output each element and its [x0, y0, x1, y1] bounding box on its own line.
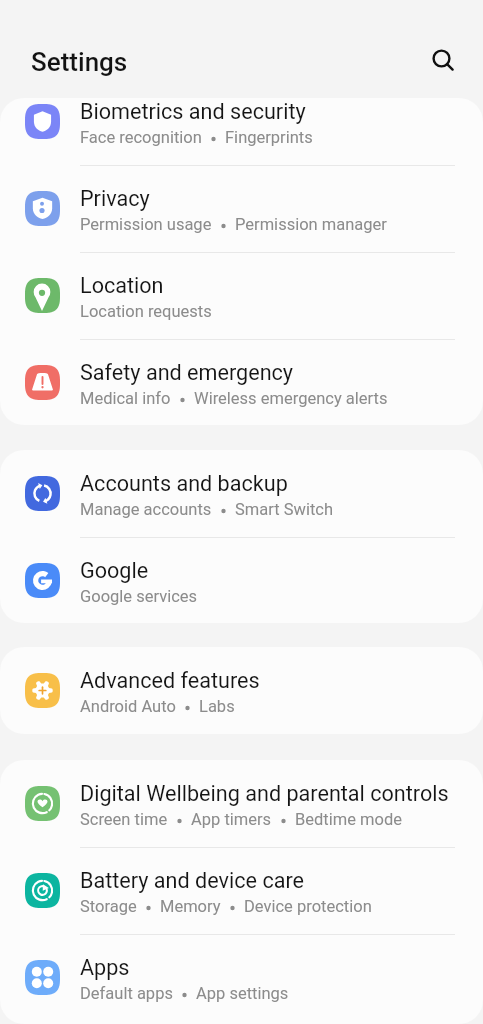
- staticText: Default apps: [80, 984, 173, 1003]
- staticText: Permission manager: [235, 215, 387, 234]
- staticText: Location requests: [80, 302, 212, 321]
- button[interactable]: Advanced features: [0, 647, 483, 734]
- staticText: Biometrics and security: [80, 99, 306, 124]
- staticText: Fingerprints: [225, 128, 313, 147]
- staticText: Digital Wellbeing and parental controls: [80, 781, 449, 806]
- button[interactable]: Digital Wellbeing and parental controls: [0, 760, 483, 847]
- staticText: Android Auto: [80, 697, 176, 716]
- staticText: Labs: [199, 697, 235, 716]
- staticText: App timers: [191, 810, 272, 829]
- staticText: App settings: [196, 984, 289, 1003]
- button[interactable]: Search: [417, 35, 465, 83]
- button[interactable]: Accounts and backup: [0, 450, 483, 537]
- staticText: Permission usage: [80, 215, 212, 234]
- staticText: Battery and device care: [80, 868, 304, 893]
- staticText: Device protection: [244, 897, 372, 916]
- staticText: Accounts and backup: [80, 471, 288, 496]
- staticText: Storage: [80, 897, 137, 916]
- button[interactable]: Battery and device care: [0, 847, 483, 934]
- button[interactable]: Biometrics and security: [0, 98, 483, 165]
- button[interactable]: Apps: [0, 934, 483, 1021]
- staticText: Bedtime mode: [295, 810, 402, 829]
- button[interactable]: Google: [0, 537, 483, 623]
- staticText: Safety and emergency: [80, 360, 294, 385]
- staticText: Advanced features: [80, 668, 260, 693]
- staticText: Face recognition: [80, 128, 202, 147]
- button[interactable]: Location: [0, 252, 483, 339]
- staticText: Wireless emergency alerts: [194, 389, 388, 408]
- staticText: Manage accounts: [80, 500, 212, 519]
- staticText: Location: [80, 273, 164, 298]
- staticText: Apps: [80, 955, 130, 980]
- staticText: Smart Switch: [235, 500, 334, 519]
- staticText: Settings: [31, 47, 128, 77]
- staticText: Medical info: [80, 389, 171, 408]
- staticText: Google services: [80, 587, 198, 606]
- staticText: Memory: [160, 897, 221, 916]
- staticText: Screen time: [80, 810, 168, 829]
- button[interactable]: Privacy: [0, 165, 483, 252]
- staticText: Privacy: [80, 186, 150, 211]
- button[interactable]: Safety and emergency: [0, 339, 483, 425]
- staticText: Google: [80, 558, 149, 583]
